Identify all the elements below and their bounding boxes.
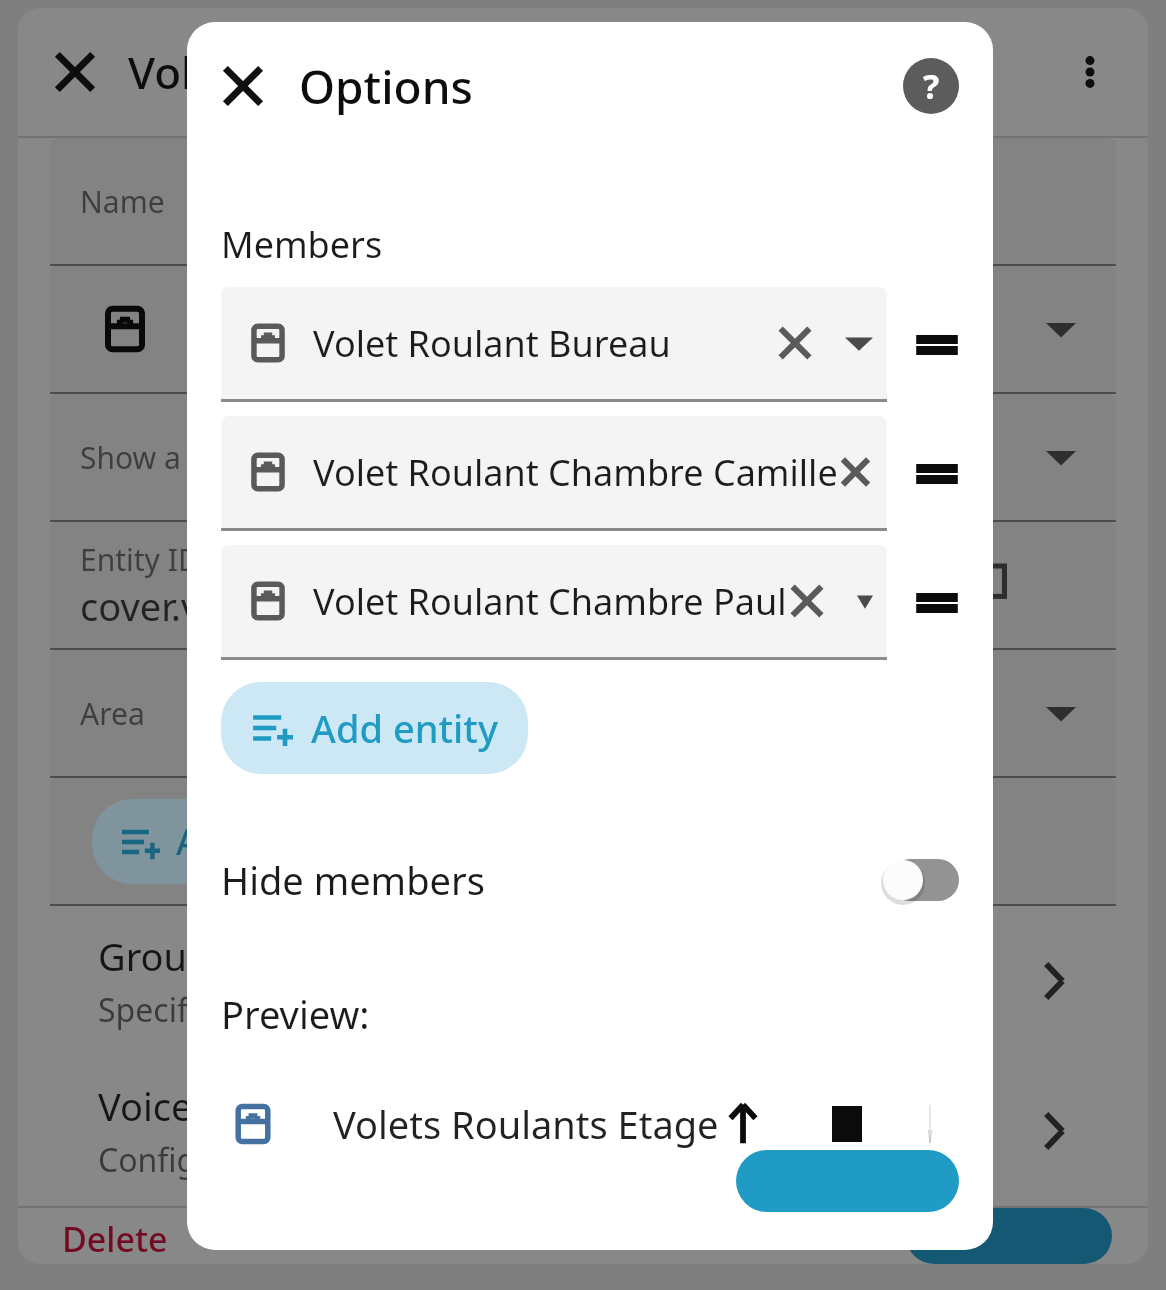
button[interactable]: Close shutter	[927, 1100, 933, 1148]
staticText: Delete	[62, 1216, 168, 1256]
button[interactable]: Hide members	[221, 854, 959, 906]
button[interactable]: Close	[54, 51, 96, 93]
staticText: Volet Roulant Chambre Camille	[313, 448, 838, 497]
button[interactable]: Ico	[50, 266, 1116, 392]
staticText: Preview:	[221, 988, 370, 1040]
button[interactable]: Reorder	[911, 451, 963, 497]
button[interactable]: Delete	[54, 1208, 176, 1264]
staticText: Voice a	[98, 1080, 224, 1132]
button[interactable]: Close	[221, 64, 265, 108]
button[interactable]: More options	[1068, 50, 1112, 94]
button[interactable]: Reorder	[911, 580, 963, 626]
button[interactable]: Entity ID*	[50, 522, 1116, 648]
staticText: Area	[80, 693, 145, 734]
button[interactable]: Open	[719, 1100, 767, 1148]
button[interactable]: Volet Roulant Chambre Paul	[221, 545, 887, 657]
button[interactable]: Volet Roulant Chambre Camille	[221, 416, 887, 528]
staticText: Specific	[98, 988, 212, 1032]
staticText: Add entity	[311, 702, 498, 754]
staticText: Volet Roulant Bureau	[313, 319, 671, 368]
staticText: ?	[923, 63, 940, 109]
staticText: Volet	[128, 42, 236, 102]
staticText: Members	[221, 220, 383, 269]
button[interactable]: Volet Roulant Bureau	[221, 287, 887, 399]
staticText: Ad	[176, 817, 222, 866]
button[interactable]: Voice a	[50, 1056, 1116, 1206]
staticText: Show a	[80, 437, 181, 478]
button[interactable]: Submit	[736, 1150, 959, 1212]
button[interactable]: Show a	[50, 394, 1116, 520]
button[interactable]: Stop	[823, 1100, 871, 1148]
staticText: Options	[299, 55, 473, 118]
staticText: Volet Roulant Chambre Paul	[313, 577, 787, 626]
button[interactable]: Reorder	[911, 322, 963, 368]
staticText: Hide members	[221, 854, 485, 906]
button[interactable]: Name	[50, 138, 1116, 264]
button[interactable]: Ad	[92, 799, 250, 884]
staticText: Group	[98, 930, 211, 982]
button[interactable]: Update	[906, 1208, 1112, 1264]
staticText: cover.v	[80, 580, 201, 632]
button[interactable]: Group	[50, 906, 1116, 1056]
staticText: Name	[80, 181, 165, 222]
button[interactable]: Add entity	[221, 682, 528, 774]
staticText: Ico	[186, 303, 241, 355]
button[interactable]: Area	[50, 650, 1116, 776]
staticText: Update	[950, 1232, 1068, 1240]
staticText: Entity ID*	[80, 539, 217, 580]
button[interactable]: Help	[903, 58, 959, 114]
staticText: Configu	[98, 1138, 217, 1182]
staticText: Volets Roulants Etage	[333, 1098, 719, 1150]
